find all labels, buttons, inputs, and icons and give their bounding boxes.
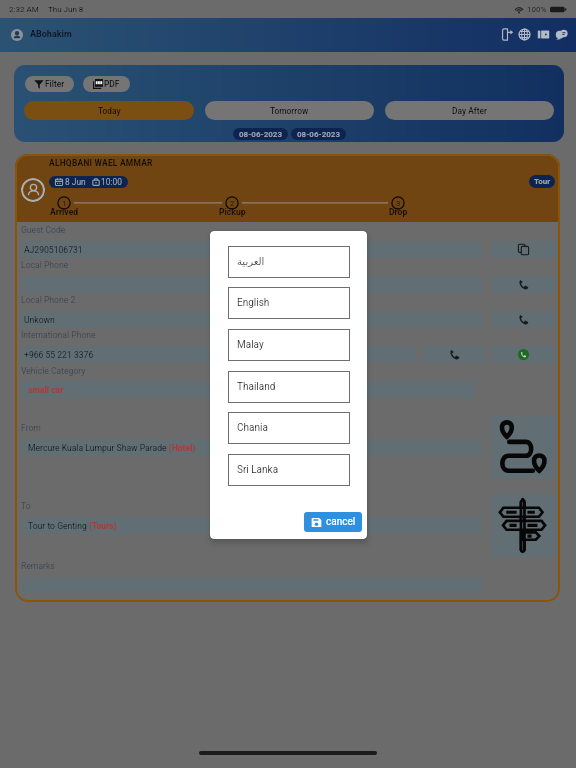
staticText: Mercure Kuala Lumpur Shaw Parade (Hotel) bbox=[28, 443, 196, 453]
staticText: Tour bbox=[534, 177, 551, 186]
button[interactable]: Sri Lanka bbox=[228, 454, 350, 486]
staticText: To bbox=[21, 501, 31, 511]
button[interactable]: Profile bbox=[11, 29, 23, 41]
button[interactable]: Copy bbox=[491, 241, 555, 258]
staticText: Drop bbox=[389, 207, 408, 217]
staticText: العربية bbox=[237, 256, 265, 268]
button[interactable]: Call bbox=[491, 311, 555, 328]
staticText: 2 bbox=[230, 199, 235, 208]
button[interactable]: Logout bbox=[500, 27, 515, 42]
staticText: Tour to Genting (Tours) bbox=[28, 521, 117, 531]
button[interactable]: 08-06-2023 bbox=[291, 128, 346, 140]
staticText: Pickup bbox=[219, 207, 246, 217]
staticText: Day After bbox=[452, 106, 487, 116]
button[interactable]: Language bbox=[517, 27, 532, 42]
staticText: Today bbox=[98, 106, 121, 116]
staticText: Unkown bbox=[24, 315, 55, 325]
button[interactable]: Thailand bbox=[228, 371, 350, 403]
staticText: ABohakim bbox=[30, 29, 72, 40]
button[interactable]: Tomorrow bbox=[205, 101, 374, 120]
staticText: Sri Lanka bbox=[237, 464, 279, 476]
staticText: Remarks bbox=[21, 561, 55, 571]
staticText: Thu Jun 8 bbox=[48, 5, 84, 14]
staticText: Arrived bbox=[50, 207, 79, 217]
staticText: Local Phone 2 bbox=[21, 295, 76, 305]
staticText: Filter bbox=[45, 79, 65, 89]
button[interactable]: 08-06-2023 bbox=[233, 128, 288, 140]
button[interactable]: 8 Jun bbox=[49, 176, 128, 188]
staticText: Thailand bbox=[237, 381, 276, 393]
button[interactable]: Today bbox=[24, 101, 194, 120]
button[interactable]: Call bbox=[422, 346, 486, 363]
staticText: 3 bbox=[396, 199, 401, 208]
button[interactable]: Mercure Kuala Lumpur Shaw Parade (Hotel) bbox=[28, 439, 482, 456]
staticText: AJ2905106731 bbox=[24, 245, 83, 255]
staticText: 08-06-2023 bbox=[239, 130, 283, 139]
button[interactable]: Route map bbox=[491, 415, 555, 478]
staticText: PDF bbox=[104, 79, 120, 89]
button[interactable]: English bbox=[228, 287, 350, 319]
button[interactable]: Wallet bbox=[536, 27, 551, 42]
button[interactable]: Tour to Genting (Tours) bbox=[28, 517, 482, 534]
button[interactable]: Filter bbox=[25, 76, 74, 92]
button[interactable]: Chania bbox=[228, 412, 350, 444]
button[interactable]: Directions bbox=[491, 494, 555, 557]
button[interactable]: WhatsApp bbox=[491, 346, 555, 363]
staticText: 08-06-2023 bbox=[297, 130, 341, 139]
staticText: International Phone bbox=[21, 330, 96, 340]
button[interactable]: Malay bbox=[228, 329, 350, 361]
staticText: 100% bbox=[527, 5, 547, 14]
staticText: Vehicle Category bbox=[21, 366, 86, 376]
button[interactable]: PDF bbox=[83, 76, 130, 92]
staticText: 10:00 bbox=[101, 177, 122, 187]
staticText: 2:32 AM bbox=[9, 5, 39, 14]
button[interactable]: العربية bbox=[228, 246, 350, 278]
staticText: small car bbox=[28, 385, 64, 395]
staticText: English bbox=[237, 297, 270, 309]
button[interactable]: cancel bbox=[304, 512, 362, 532]
staticText: cancel bbox=[326, 516, 356, 528]
button[interactable]: Day After bbox=[385, 101, 554, 120]
staticText: Guest Code bbox=[21, 225, 66, 235]
staticText: Local Phone bbox=[21, 260, 69, 270]
button[interactable]: Tour bbox=[529, 175, 555, 188]
staticText: 1 bbox=[62, 199, 67, 208]
button[interactable]: Call bbox=[491, 276, 555, 293]
staticText: Malay bbox=[237, 339, 264, 351]
staticText: +966 55 221 3376 bbox=[24, 350, 94, 360]
staticText: Tomorrow bbox=[270, 106, 309, 116]
staticText: 8 Jun bbox=[65, 177, 86, 187]
staticText: ALHQBANI WAEL AMMAR bbox=[49, 158, 153, 168]
button[interactable]: Messages bbox=[554, 27, 569, 42]
staticText: From bbox=[21, 423, 41, 433]
staticText: Chania bbox=[237, 422, 268, 434]
